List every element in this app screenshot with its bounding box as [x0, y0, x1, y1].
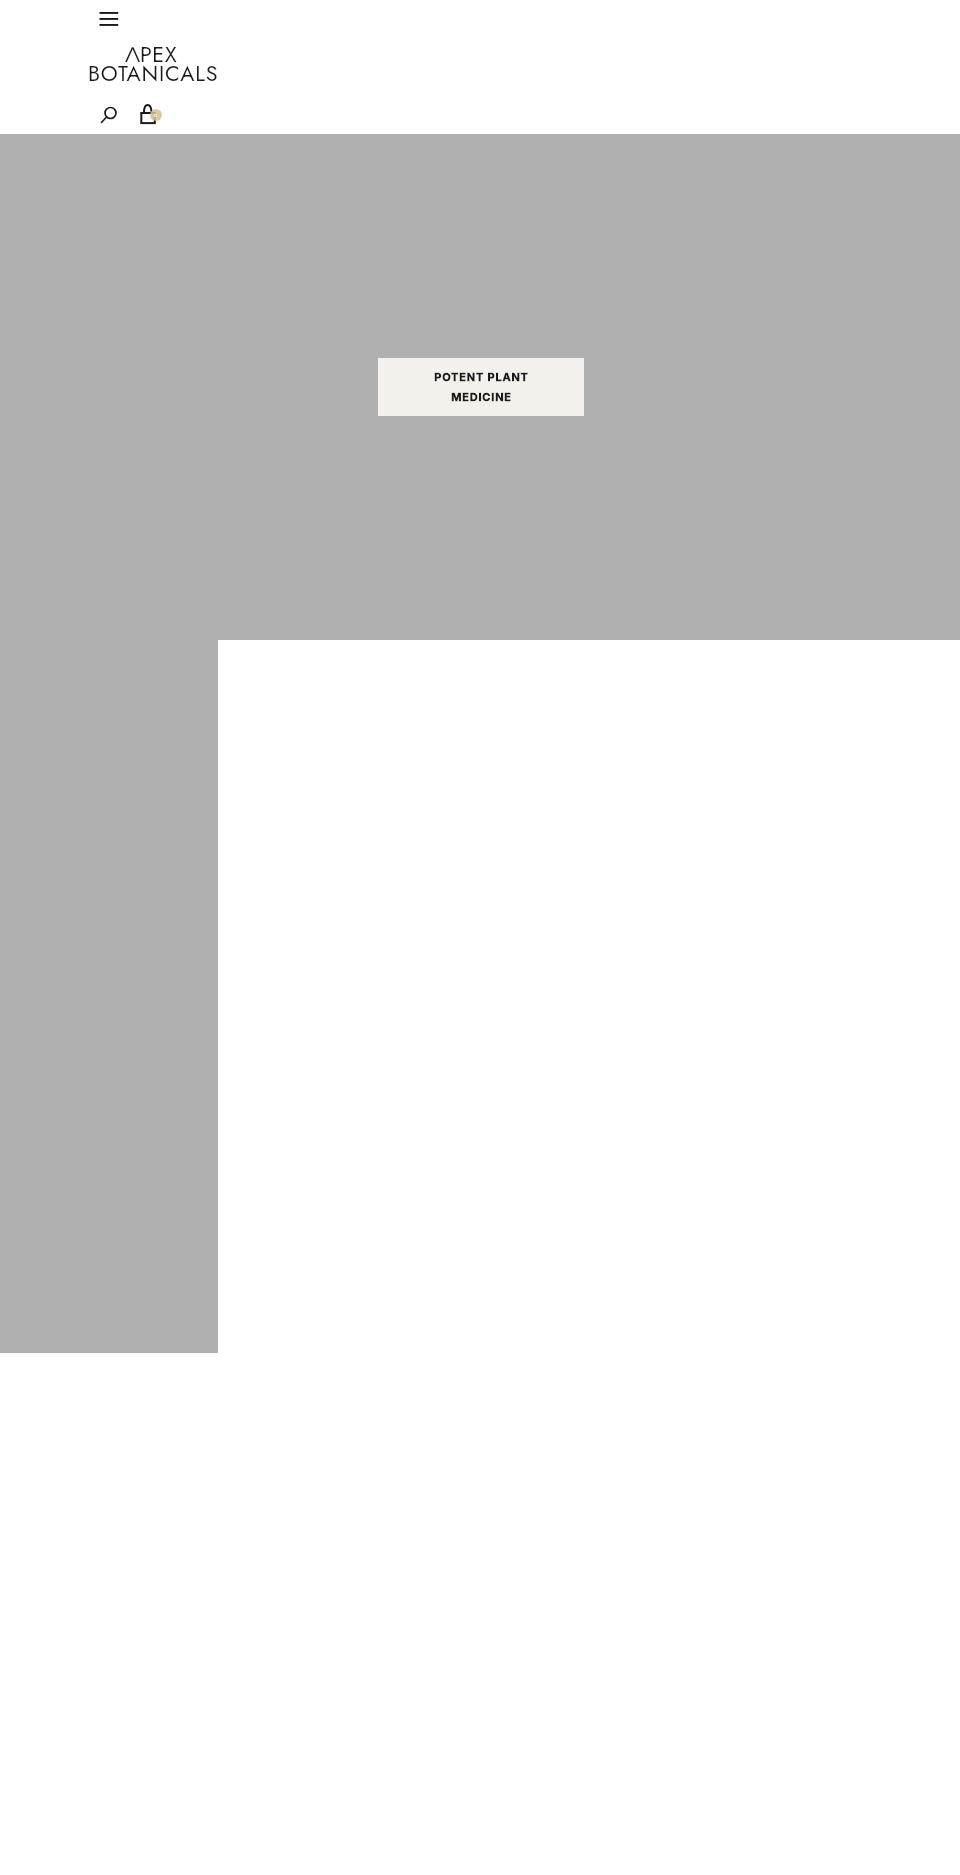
button[interactable]: Search	[96, 101, 126, 127]
button[interactable]: Shopping bag, 0 items	[134, 100, 164, 128]
staticText: PEX	[140, 39, 178, 70]
button[interactable]: Open navigation menu	[90, 3, 128, 37]
button[interactable]: Apex Botanicals, home	[78, 38, 228, 86]
button[interactable]: POTENT PLANT MEDICINE	[378, 358, 584, 416]
staticText: 0	[154, 112, 158, 119]
staticText: BOTANICALS	[88, 58, 219, 89]
staticText: POTENT PLANT MEDICINE	[434, 370, 529, 404]
